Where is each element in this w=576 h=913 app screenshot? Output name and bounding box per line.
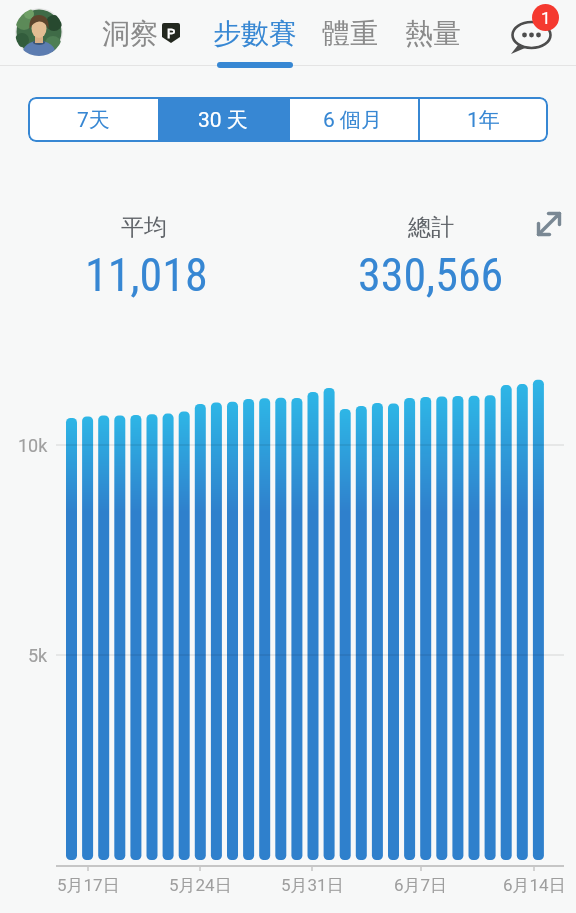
staticText: 步數賽 — [213, 16, 297, 51]
staticText: 5k — [28, 645, 48, 666]
staticText: 7天 — [77, 107, 110, 133]
staticText: 體重 — [322, 16, 378, 51]
staticText: 6月14日 — [503, 875, 566, 896]
staticText: P — [167, 26, 176, 41]
staticText: 330,566 — [358, 248, 504, 302]
staticText: 1年 — [467, 107, 500, 133]
button[interactable]: 1年 — [418, 97, 548, 142]
button[interactable] — [92, 10, 188, 56]
button[interactable]: 1 — [504, 4, 564, 60]
button[interactable] — [532, 203, 568, 243]
staticText: 熱量 — [405, 16, 461, 51]
staticText: 5月24日 — [169, 875, 232, 896]
button[interactable]: 體重 — [318, 10, 382, 56]
staticText: 30 天 — [198, 107, 248, 133]
button[interactable]: 6 個月 — [288, 97, 418, 142]
staticText: 5月31日 — [281, 875, 344, 896]
button[interactable] — [15, 8, 63, 56]
staticText: 6 個月 — [323, 107, 383, 133]
staticText: 11,018 — [85, 248, 208, 302]
button[interactable]: 30 天 — [158, 97, 288, 142]
button[interactable]: 步數賽 — [209, 10, 301, 56]
staticText: 5月17日 — [57, 875, 120, 896]
staticText: 1 — [541, 8, 551, 28]
staticText: 10k — [18, 435, 48, 456]
staticText: 總計 — [408, 213, 454, 242]
button[interactable]: 熱量 — [401, 10, 465, 56]
staticText: 平均 — [121, 213, 167, 242]
staticText: 6月7日 — [394, 875, 448, 896]
button[interactable]: 7天 — [28, 97, 158, 142]
staticText: 洞察 — [102, 16, 158, 51]
